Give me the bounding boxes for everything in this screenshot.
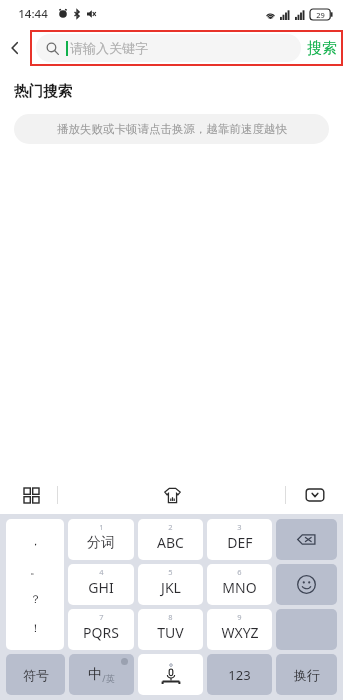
- staticText: GHI: [88, 578, 114, 597]
- staticText: 4: [99, 567, 104, 577]
- staticText: 14:44: [18, 6, 48, 22]
- button[interactable]: 5: [138, 564, 203, 605]
- staticText: 3: [237, 522, 242, 532]
- button[interactable]: 123: [207, 654, 272, 695]
- button[interactable]: 播放失败或卡顿请点击换源，越靠前速度越快: [14, 114, 329, 144]
- button[interactable]: [276, 609, 337, 650]
- staticText: 请输入关键字: [70, 40, 148, 56]
- staticText: MNO: [222, 578, 257, 597]
- button[interactable]: 8: [138, 609, 203, 650]
- staticText: 。: [30, 563, 41, 577]
- staticText: WXYZ: [221, 623, 259, 642]
- staticText: 2: [168, 522, 173, 532]
- button[interactable]: 中: [69, 654, 134, 695]
- staticText: JKL: [161, 578, 181, 597]
- staticText: 29: [316, 10, 325, 20]
- button[interactable]: 4: [68, 564, 134, 605]
- staticText: 8: [168, 612, 173, 622]
- staticText: TUV: [157, 623, 184, 642]
- button[interactable]: 1: [68, 519, 134, 560]
- button[interactable]: Key: [276, 564, 337, 605]
- button[interactable]: 换行: [276, 654, 337, 695]
- button[interactable]: Hide keyboard: [301, 481, 329, 509]
- staticText: 热门搜索: [14, 82, 72, 100]
- staticText: PQRS: [83, 623, 119, 642]
- staticText: 符号: [23, 667, 49, 683]
- staticText: /英: [102, 672, 115, 684]
- staticText: 中: [88, 666, 102, 684]
- staticText: 5: [168, 567, 173, 577]
- button[interactable]: 请输入关键字: [36, 34, 301, 62]
- staticText: 9: [237, 612, 242, 622]
- button[interactable]: 3: [207, 519, 272, 560]
- button[interactable]: Space / voice input: [138, 654, 203, 695]
- staticText: 1: [99, 522, 104, 532]
- staticText: 123: [228, 666, 251, 684]
- staticText: 播放失败或卡顿请点击换源，越靠前速度越快: [57, 122, 287, 136]
- staticText: 6: [237, 567, 242, 577]
- button[interactable]: 6: [207, 564, 272, 605]
- button[interactable]: 9: [207, 609, 272, 650]
- staticText: ？: [30, 592, 41, 606]
- button[interactable]: 2: [138, 519, 203, 560]
- staticText: ！: [30, 621, 41, 635]
- staticText: 换行: [294, 667, 320, 683]
- button[interactable]: Key: [276, 519, 337, 560]
- button[interactable]: 搜索: [307, 39, 337, 58]
- button[interactable]: ，: [6, 519, 64, 650]
- staticText: 搜索: [307, 39, 337, 58]
- staticText: DEF: [227, 533, 253, 552]
- button[interactable]: Theme: [158, 481, 186, 509]
- staticText: ABC: [157, 533, 184, 552]
- button[interactable]: Keyboard layouts: [18, 482, 44, 508]
- button[interactable]: 7: [68, 609, 134, 650]
- staticText: 分词: [87, 534, 115, 552]
- button[interactable]: 符号: [6, 654, 65, 695]
- staticText: 7: [99, 612, 104, 622]
- staticText: ，: [30, 534, 41, 548]
- button[interactable]: Back: [0, 33, 30, 63]
